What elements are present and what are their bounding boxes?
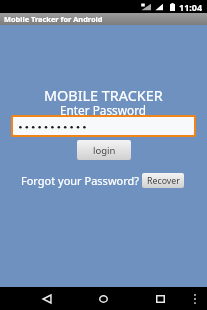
staticText: MOBILE TRACKER [44, 86, 163, 106]
staticText: Enter Password [60, 102, 147, 118]
staticText: Forgot your Password? [21, 173, 140, 188]
button[interactable]: Back [32, 287, 61, 310]
button[interactable]: More options [187, 287, 203, 310]
staticText: login [93, 144, 116, 157]
button[interactable]: Recover [142, 173, 184, 188]
button[interactable] [13, 117, 194, 135]
button[interactable]: login [77, 140, 131, 160]
staticText: 11:04 [179, 1, 203, 13]
staticText: Mobile Tracker for Android [4, 14, 103, 24]
staticText: Recover [147, 175, 180, 187]
button[interactable]: Home [89, 287, 118, 310]
button[interactable]: Recents [146, 287, 175, 310]
